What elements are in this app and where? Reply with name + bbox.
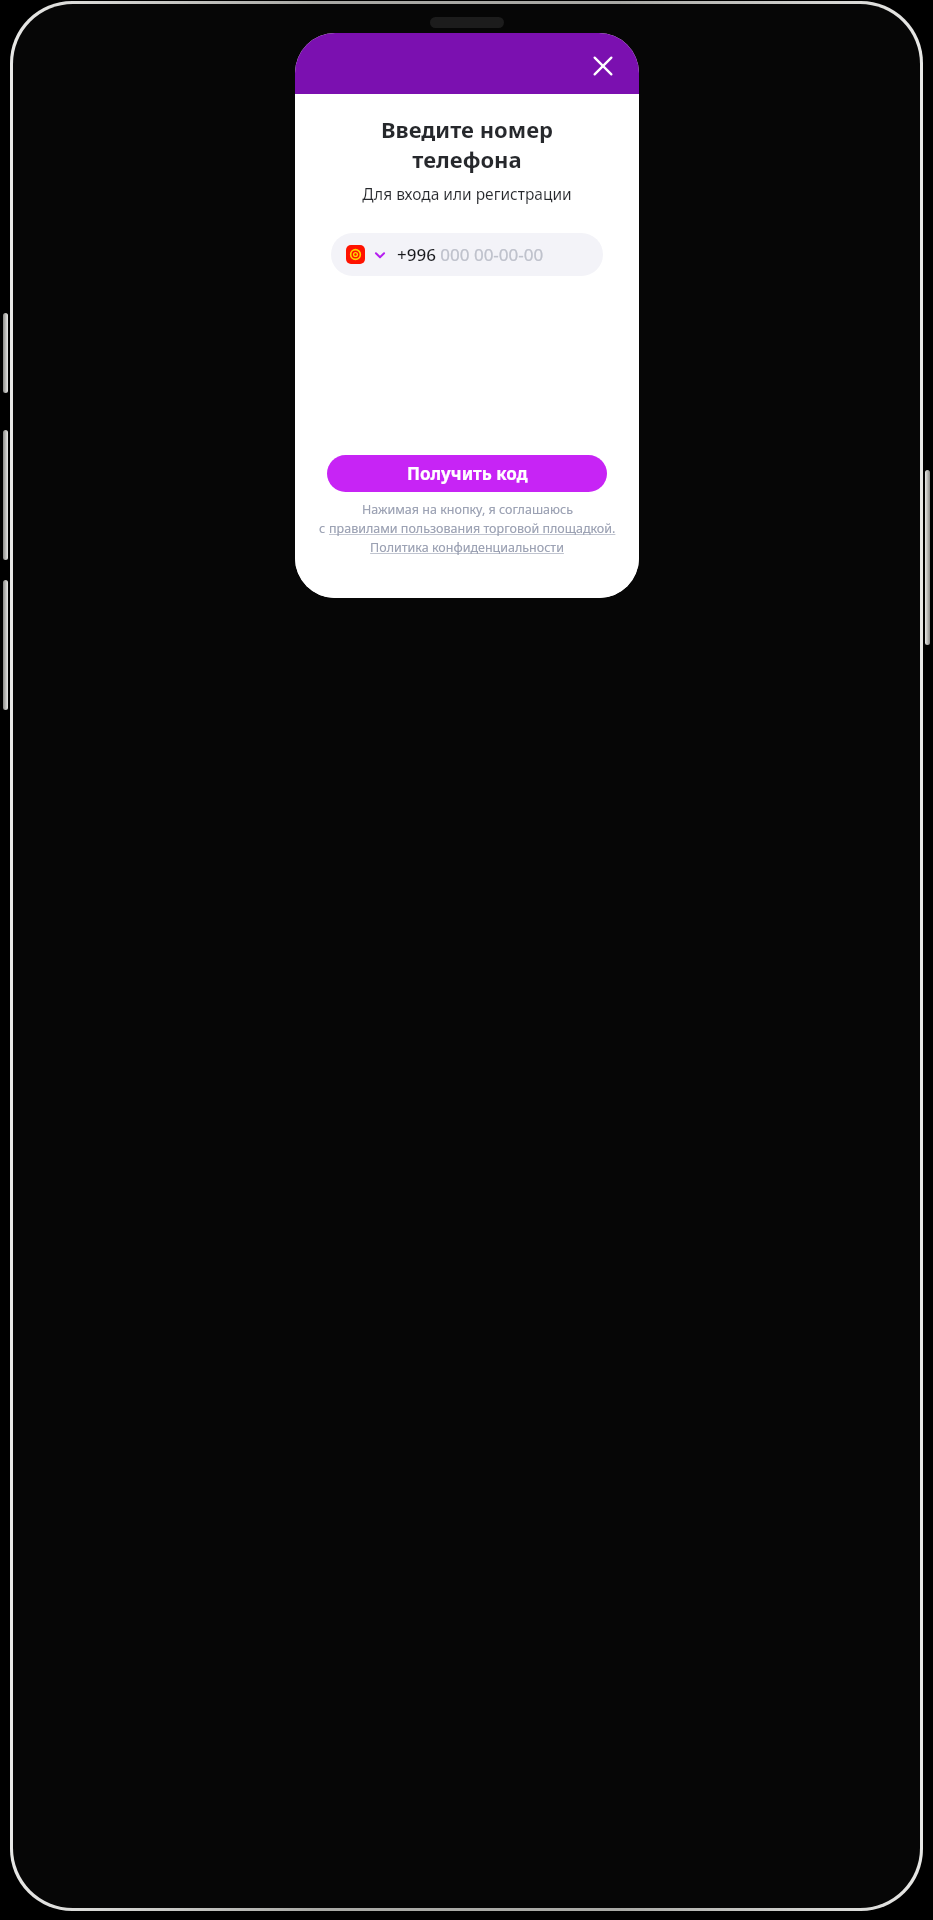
staticText: +996 000 00-00-00: [397, 243, 544, 266]
staticText: Для входа или регистрации: [362, 183, 572, 204]
staticText: с: [319, 520, 329, 537]
button[interactable]: Закрыть: [581, 44, 625, 88]
button[interactable]: правилами пользования торговой площадкой…: [329, 520, 616, 537]
staticText: телефона: [412, 144, 522, 174]
staticText: Политика конфиденциальности: [370, 539, 564, 556]
button[interactable]: Политика конфиденциальности: [370, 539, 564, 556]
staticText: правилами пользования торговой площадкой…: [329, 520, 616, 537]
staticText: Нажимая на кнопку, я соглашаюсь: [362, 501, 573, 518]
staticText: Введите номер: [381, 114, 553, 144]
button[interactable]: +996 000 00-00-00: [331, 233, 603, 276]
button[interactable]: Получить код: [327, 455, 607, 492]
staticText: Получить код: [407, 462, 528, 485]
